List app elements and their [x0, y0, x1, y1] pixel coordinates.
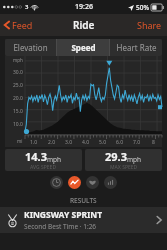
- button[interactable]: Heart rate: [86, 176, 99, 189]
- staticText: mph: [13, 57, 23, 63]
- staticText: 3.0: [65, 139, 73, 146]
- staticText: 30.0: [13, 69, 23, 76]
- button[interactable]: Power: [104, 176, 117, 189]
- button[interactable]: Heart Rate: [110, 39, 162, 56]
- staticText: mph: [47, 155, 62, 164]
- staticText: 20.0: [13, 95, 23, 102]
- staticText: 7.0: [133, 139, 141, 146]
- staticText: 15.0: [13, 108, 23, 115]
- staticText: 10.0: [13, 121, 23, 128]
- staticText: MAX SPEED: [110, 164, 138, 171]
- staticText: 5.0: [99, 139, 107, 146]
- button[interactable]: 29.3: [85, 149, 162, 171]
- button[interactable]: Elevation: [5, 39, 56, 56]
- button[interactable]: 14.3: [5, 149, 82, 171]
- staticText: 3: [25, 3, 29, 11]
- staticText: 14.3: [25, 149, 47, 164]
- staticText: 29.3: [105, 149, 127, 164]
- staticText: Second Best Time · 1:26: [24, 222, 97, 231]
- button[interactable]: Share: [132, 15, 167, 35]
- staticText: 25.0: [13, 82, 23, 89]
- staticText: Feed: [12, 19, 33, 31]
- staticText: 4.0: [82, 139, 90, 146]
- button[interactable]: KINGSWAY SPRINT: [0, 207, 167, 233]
- staticText: mi: [17, 138, 23, 144]
- staticText: 8: [152, 139, 155, 146]
- button[interactable]: Speed: [57, 39, 109, 56]
- staticText: RESULTS: [70, 196, 97, 205]
- staticText: Ride: [73, 18, 95, 32]
- button[interactable]: Feed: [0, 16, 37, 34]
- staticText: 2.0: [48, 139, 56, 146]
- staticText: Elevation: [13, 42, 48, 53]
- staticText: Heart Rate: [116, 42, 157, 53]
- staticText: KINGSWAY SPRINT: [24, 209, 103, 221]
- button[interactable]: Time: [50, 176, 63, 189]
- staticText: mph: [127, 155, 142, 164]
- staticText: Share: [137, 19, 162, 31]
- staticText: 1.0: [30, 139, 38, 146]
- staticText: AVG SPEED: [30, 164, 57, 171]
- staticText: 19:26: [75, 2, 93, 12]
- staticText: 6.0: [116, 139, 124, 146]
- button[interactable]: Speed: [68, 176, 81, 189]
- staticText: Speed: [71, 42, 96, 53]
- staticText: 50%: [136, 3, 149, 12]
- other: Open result: [156, 215, 162, 225]
